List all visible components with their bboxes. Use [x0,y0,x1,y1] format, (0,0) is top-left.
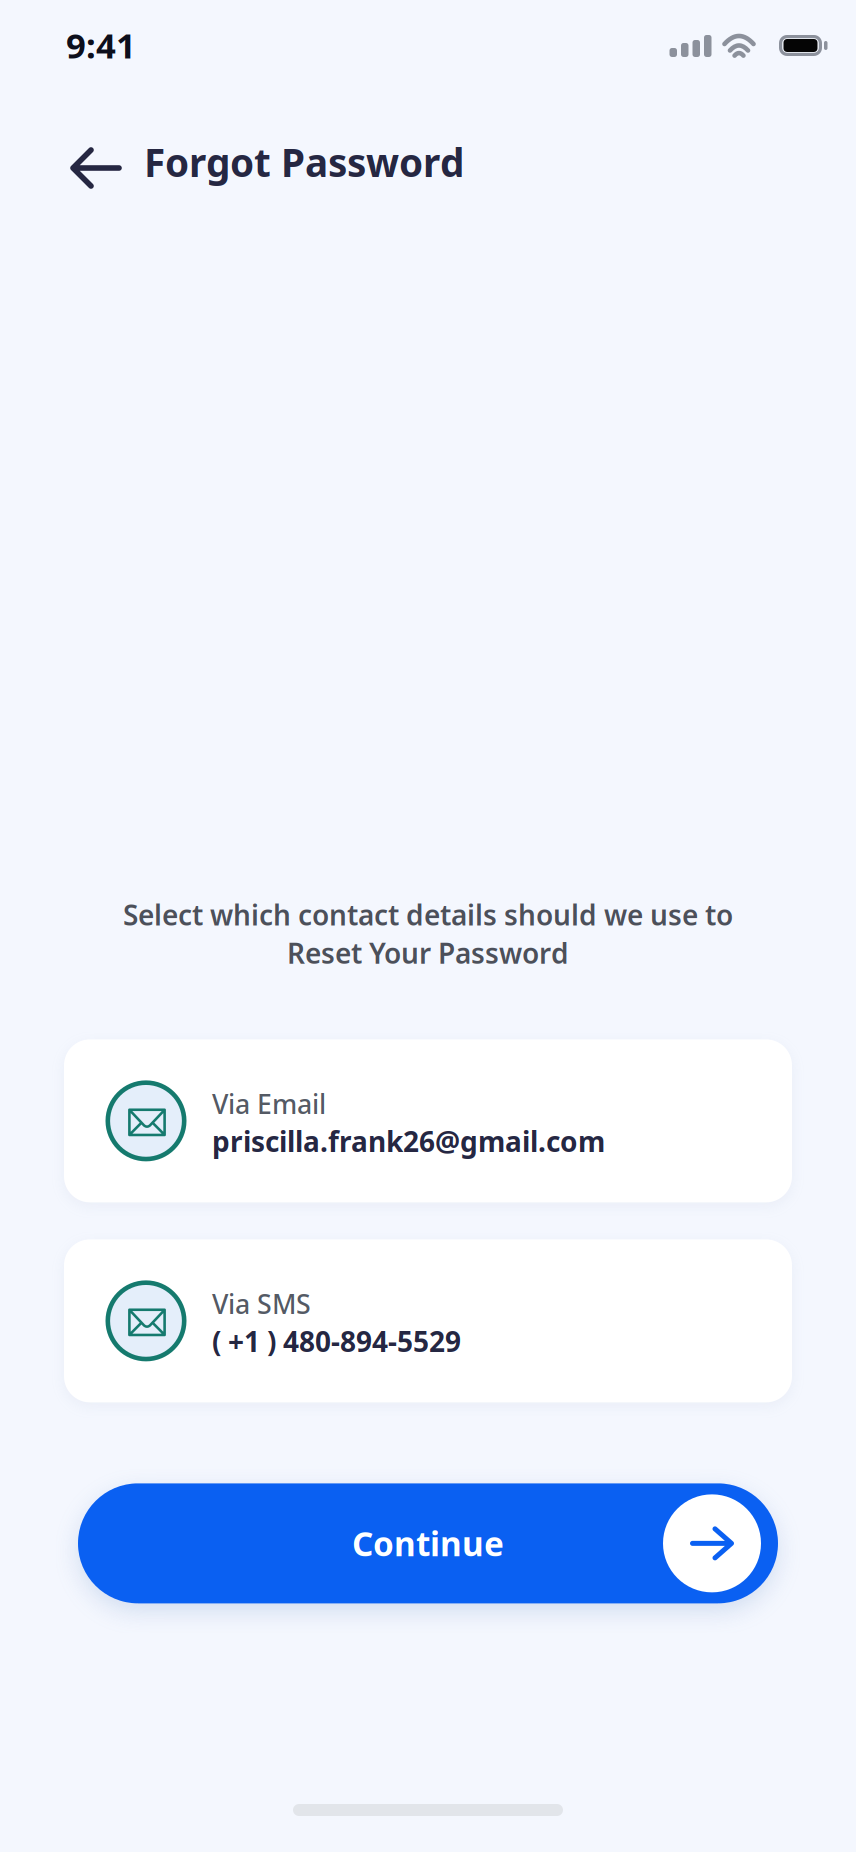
staticText: Via SMS [212,1286,311,1321]
staticText: Select which contact details should we u… [123,896,733,933]
staticText: Continue [352,1521,504,1565]
staticText: priscilla.frank26@gmail.com [212,1122,605,1160]
staticText: ( +1 ) 480-894-5529 [212,1322,461,1360]
staticText: 9:41 [66,22,136,68]
button[interactable]: Continue [78,1483,778,1603]
staticText: Reset Your Password [287,934,569,971]
button[interactable]: Back [61,138,131,198]
staticText: Forgot Password [144,136,464,188]
staticText: Via Email [212,1086,326,1121]
button[interactable]: Via Email [64,1039,792,1202]
button[interactable]: Via SMS [64,1239,792,1402]
